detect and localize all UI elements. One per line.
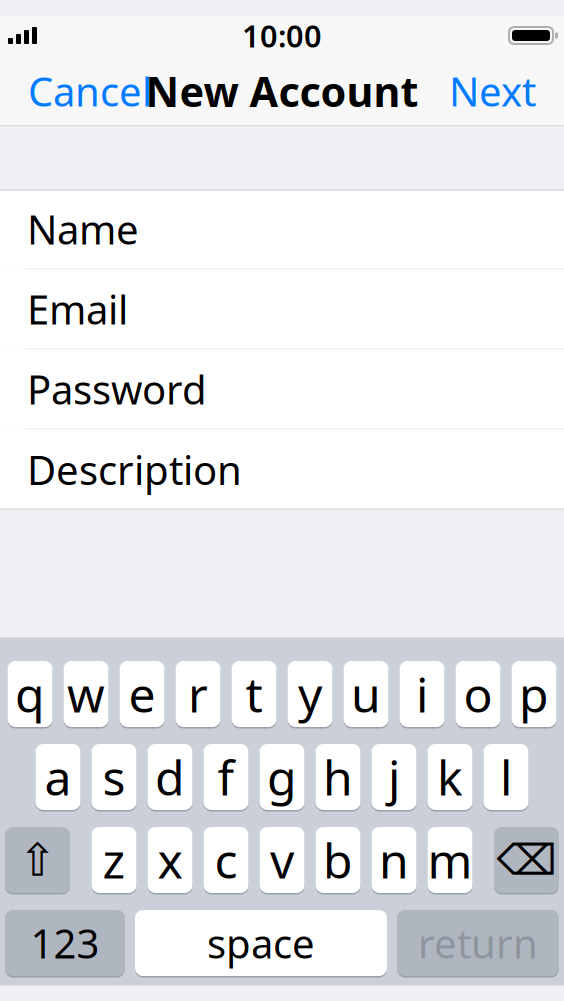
staticText: n: [379, 828, 409, 892]
button[interactable]: f: [203, 742, 248, 811]
staticText: c: [214, 828, 237, 892]
staticText: a: [44, 745, 71, 809]
button[interactable]: 123: [5, 908, 125, 977]
button[interactable]: k: [427, 742, 472, 811]
button[interactable]: x: [147, 825, 192, 894]
button[interactable]: p: [511, 659, 556, 728]
button[interactable]: j: [371, 742, 416, 811]
button[interactable]: Delete: [494, 825, 559, 894]
button[interactable]: return: [397, 908, 559, 977]
button[interactable]: c: [203, 825, 248, 894]
staticText: New Account: [145, 64, 418, 118]
button[interactable]: z: [91, 825, 136, 894]
button[interactable]: q: [7, 659, 52, 728]
staticText: Description: [27, 443, 242, 496]
button[interactable]: Password: [0, 349, 564, 429]
staticText: o: [463, 662, 492, 726]
staticText: h: [323, 745, 353, 809]
button[interactable]: Name: [0, 189, 564, 269]
button[interactable]: Description: [0, 429, 564, 509]
button[interactable]: Shift: [5, 825, 70, 894]
button[interactable]: t: [231, 659, 276, 728]
staticText: Cancel: [28, 64, 152, 117]
staticText: k: [437, 745, 463, 809]
staticText: ⌫: [496, 836, 556, 884]
staticText: u: [351, 662, 381, 726]
staticText: j: [388, 745, 400, 809]
button[interactable]: Next: [437, 54, 548, 127]
staticText: e: [128, 662, 155, 726]
button[interactable]: u: [343, 659, 388, 728]
button[interactable]: i: [399, 659, 444, 728]
button[interactable]: m: [427, 825, 472, 894]
button[interactable]: b: [315, 825, 360, 894]
staticText: i: [416, 662, 428, 726]
staticText: m: [427, 828, 472, 892]
button[interactable]: s: [91, 742, 136, 811]
staticText: Password: [27, 362, 207, 415]
staticText: r: [188, 662, 208, 726]
staticText: p: [519, 662, 549, 726]
button[interactable]: y: [287, 659, 332, 728]
staticText: y: [298, 662, 322, 726]
button[interactable]: Email: [0, 269, 564, 349]
button[interactable]: r: [175, 659, 220, 728]
button[interactable]: d: [147, 742, 192, 811]
button[interactable]: g: [259, 742, 304, 811]
staticText: return: [418, 916, 538, 969]
staticText: l: [500, 745, 512, 809]
staticText: 123: [30, 916, 99, 969]
staticText: ⇧: [18, 834, 56, 886]
button[interactable]: h: [315, 742, 360, 811]
staticText: g: [267, 745, 297, 809]
button[interactable]: l: [483, 742, 528, 811]
button[interactable]: e: [119, 659, 164, 728]
staticText: f: [217, 745, 234, 809]
staticText: d: [155, 745, 185, 809]
button[interactable]: space: [135, 908, 387, 977]
staticText: s: [102, 745, 125, 809]
button[interactable]: a: [35, 742, 80, 811]
staticText: w: [67, 662, 105, 726]
button[interactable]: w: [63, 659, 108, 728]
staticText: q: [15, 662, 45, 726]
button[interactable]: Cancel: [16, 54, 164, 127]
staticText: space: [207, 916, 315, 969]
staticText: Next: [449, 64, 536, 117]
staticText: b: [323, 828, 353, 892]
staticText: v: [270, 828, 294, 892]
staticText: z: [102, 828, 125, 892]
staticText: x: [157, 828, 182, 892]
button[interactable]: o: [455, 659, 500, 728]
button[interactable]: n: [371, 825, 416, 894]
staticText: Name: [27, 202, 139, 255]
staticText: Email: [27, 282, 128, 335]
staticText: t: [245, 662, 262, 726]
button[interactable]: v: [259, 825, 304, 894]
staticText: 10:00: [242, 15, 322, 56]
